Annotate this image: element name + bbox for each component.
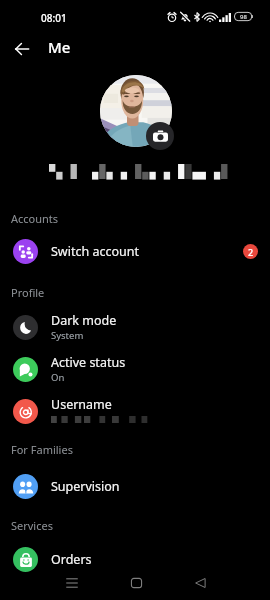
staticText: Profile bbox=[11, 285, 45, 300]
staticText: For Families bbox=[11, 442, 73, 457]
button[interactable]: Recent apps bbox=[52, 573, 92, 593]
staticText: 98 bbox=[240, 13, 247, 21]
staticText: Username bbox=[51, 396, 112, 413]
staticText: 2 bbox=[248, 246, 254, 258]
staticText: Supervision bbox=[51, 478, 120, 495]
staticText: Dark mode bbox=[51, 312, 117, 329]
staticText: Services bbox=[11, 518, 53, 533]
button[interactable]: Profile photo bbox=[100, 75, 172, 147]
button[interactable]: Orders bbox=[0, 538, 270, 580]
button[interactable]: Change profile photo bbox=[146, 122, 174, 150]
staticText: Active status bbox=[51, 354, 126, 371]
button[interactable]: Username bbox=[0, 390, 270, 432]
button[interactable]: Dark mode bbox=[0, 306, 270, 348]
staticText: Switch account bbox=[51, 243, 139, 260]
staticText: System bbox=[51, 329, 84, 342]
staticText: 08:01 bbox=[41, 11, 67, 25]
button[interactable]: Switch account bbox=[0, 230, 270, 272]
staticText: On bbox=[51, 371, 65, 384]
staticText: Accounts bbox=[11, 211, 59, 226]
button[interactable]: Back bbox=[4, 31, 40, 67]
button[interactable]: Back bbox=[180, 573, 220, 593]
staticText: Me bbox=[48, 37, 71, 57]
button[interactable]: Home bbox=[116, 573, 156, 593]
button[interactable]: Supervision bbox=[0, 465, 270, 507]
button[interactable]: Active status bbox=[0, 348, 270, 390]
staticText: Orders bbox=[51, 551, 92, 568]
